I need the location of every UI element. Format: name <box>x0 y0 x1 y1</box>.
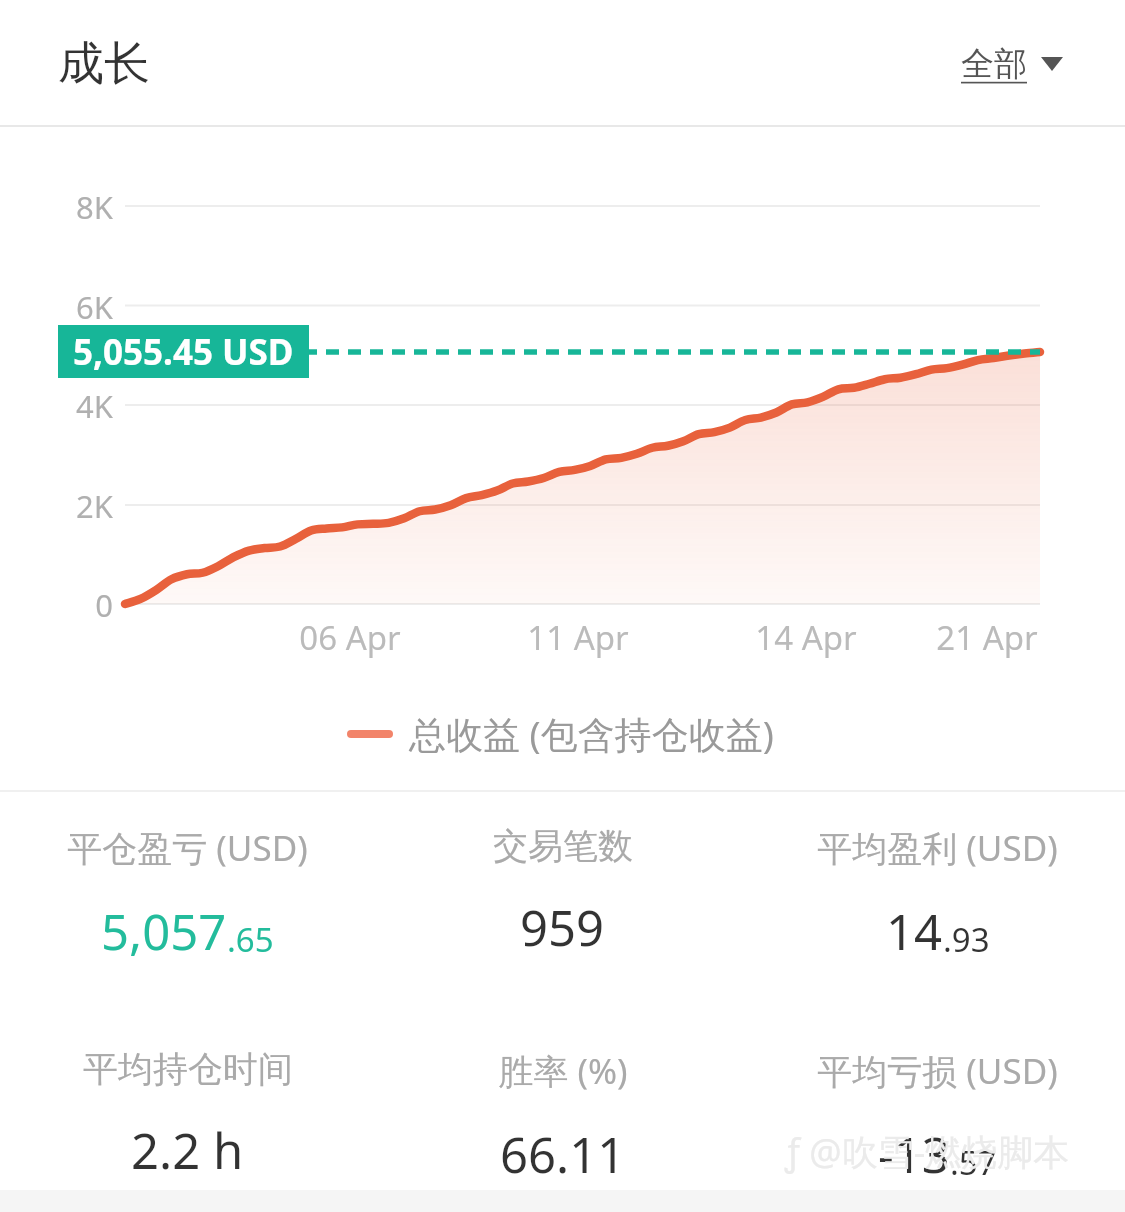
staticText: .57 <box>950 1140 997 1185</box>
button[interactable]: 全部 <box>957 37 1067 91</box>
staticText: ƒ @吹雪-燃烧脚本 <box>785 1127 1070 1176</box>
staticText: 2K <box>43 485 113 527</box>
button[interactable]: 平仓盈亏 (USD) <box>0 824 375 965</box>
staticText: 成长 <box>58 35 150 93</box>
button[interactable]: 交易笔数 <box>375 824 750 961</box>
staticText: 平仓盈亏 (USD) <box>67 824 308 872</box>
staticText: 14 <box>886 898 943 965</box>
staticText: 8K <box>43 186 113 228</box>
staticText: 6K <box>43 286 113 328</box>
button[interactable]: 5,055.45 USD <box>58 325 309 378</box>
staticText: 2.2 h <box>131 1117 244 1184</box>
button[interactable]: 平均持仓时间 <box>0 1047 375 1184</box>
staticText: 平均持仓时间 <box>83 1047 293 1091</box>
staticText: 11 Apr <box>498 615 658 660</box>
staticText: 5,057 <box>101 898 227 965</box>
staticText: 14 Apr <box>726 615 886 660</box>
button[interactable]: 平均盈利 (USD) <box>750 824 1125 965</box>
staticText: .93 <box>943 917 990 962</box>
staticText: 平均亏损 (USD) <box>817 1047 1058 1095</box>
staticText: 66.11 <box>500 1121 626 1188</box>
staticText: 0 <box>43 584 113 626</box>
staticText: 5,055.45 USD <box>73 328 294 376</box>
staticText: 06 Apr <box>270 615 430 660</box>
staticText: 平均盈利 (USD) <box>817 824 1058 872</box>
button[interactable]: 总收益 (包含持仓收益) <box>345 702 780 765</box>
staticText: 21 Apr <box>907 615 1067 660</box>
staticText: 959 <box>520 894 605 961</box>
staticText: 全部 <box>961 43 1027 85</box>
staticText: -13 <box>878 1121 950 1188</box>
button[interactable]: 胜率 (%) <box>375 1047 750 1188</box>
staticText: 总收益 (包含持仓收益) <box>409 708 774 759</box>
button[interactable]: 平均亏损 (USD) <box>750 1047 1125 1188</box>
staticText: .65 <box>227 917 274 962</box>
staticText: 胜率 (%) <box>498 1047 628 1095</box>
staticText: 4K <box>43 385 113 427</box>
staticText: 交易笔数 <box>493 824 633 868</box>
